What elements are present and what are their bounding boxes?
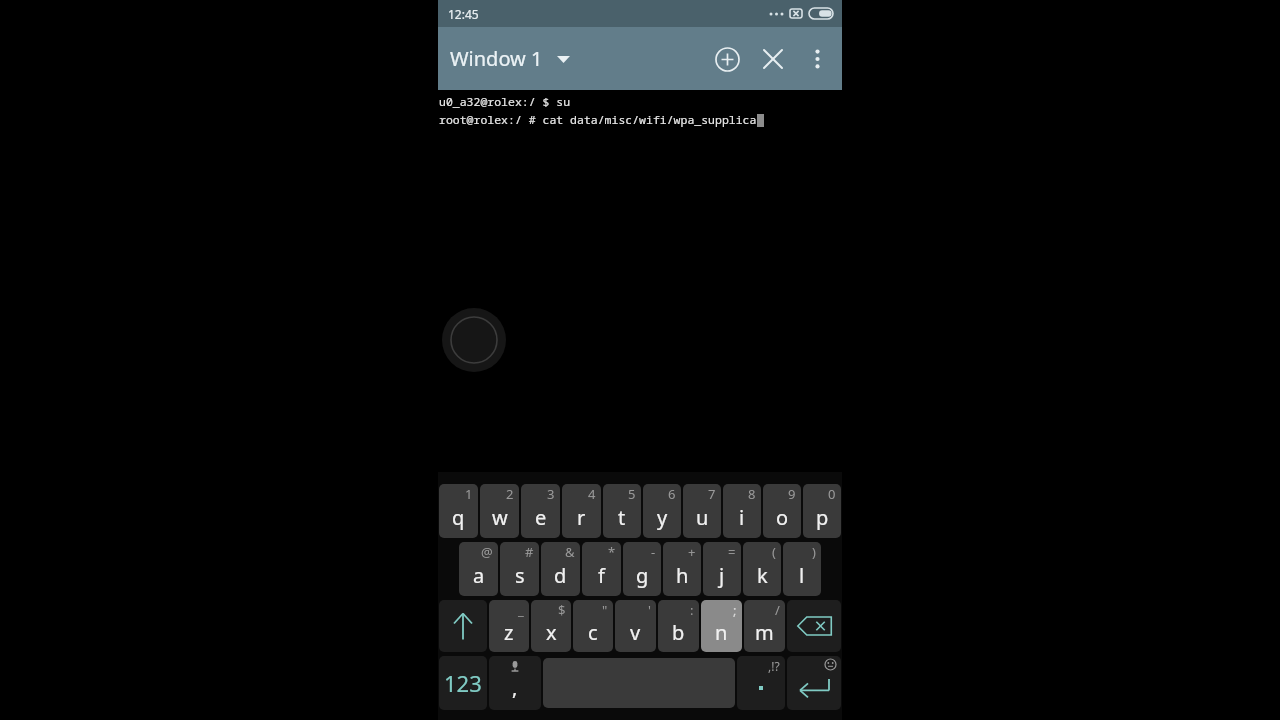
button[interactable]: $ [531,600,571,652]
button[interactable]: + [663,542,701,596]
staticText: 0 [828,485,836,503]
button[interactable]: & [541,542,580,596]
button[interactable]: : [658,600,699,652]
staticText: k [757,562,768,589]
staticText: & [565,543,575,561]
staticText: , [512,674,518,701]
button[interactable]: ; [701,600,742,652]
button[interactable]: / [744,600,785,652]
staticText: v [630,619,641,646]
staticText: * [608,543,616,561]
staticText: / [775,601,780,619]
staticText: : [690,601,694,619]
staticText: w [492,504,508,531]
button[interactable]: 1 [439,484,478,538]
staticText: 9 [788,485,796,503]
staticText: c [588,619,598,646]
staticText: d [554,562,567,589]
staticText: y [657,504,668,531]
button[interactable]: 123 [439,656,487,710]
button[interactable]: # [500,542,539,596]
staticText: @ [481,543,493,561]
button[interactable]: - [623,542,661,596]
staticText: l [799,562,805,589]
button[interactable]: 3 [521,484,560,538]
staticText: = [728,543,736,561]
staticText: 4 [588,485,596,503]
staticText: u [696,504,709,531]
staticText: root@rolex:/ # cat data/misc/wifi/wpa_su… [439,112,757,128]
button[interactable]: @ [459,542,498,596]
button[interactable]: * [582,542,621,596]
button[interactable]: , [489,656,541,710]
staticText: 2 [506,485,514,503]
staticText: ( [772,543,776,561]
staticText: $ [558,601,566,619]
staticText: ,!? [768,658,780,674]
staticText: 3 [547,485,555,503]
staticText: - [651,543,656,561]
staticText: " [602,601,608,619]
staticText: u0_a32@rolex:/ $ su [439,94,571,110]
staticText: a [473,562,485,589]
staticText: b [672,619,685,646]
staticText: 123 [444,668,482,698]
button[interactable]: 7 [683,484,721,538]
staticText: ) [812,543,816,561]
staticText: ' [648,601,651,619]
button[interactable]: = [703,542,741,596]
button[interactable]: Window 1 [444,39,576,78]
staticText: + [688,543,696,561]
staticText: 1 [465,485,473,503]
button[interactable]: Close window [750,36,796,82]
staticText: t [618,504,626,531]
staticText: z [504,619,514,646]
button[interactable]: 6 [643,484,681,538]
button[interactable]: 5 [603,484,641,538]
staticText: h [676,562,689,589]
button[interactable]: 0 [803,484,841,538]
staticText: m [755,619,774,646]
staticText: q [452,504,465,531]
button[interactable]: ( [743,542,781,596]
staticText: 6 [668,485,676,503]
button[interactable]: Backspace [787,600,841,652]
staticText: 12:45 [448,6,479,22]
staticText: n [715,619,728,646]
button[interactable]: 8 [723,484,761,538]
staticText: # [525,543,534,561]
staticText: s [515,562,525,589]
button[interactable]: Enter [787,656,841,710]
staticText: Window 1 [450,45,543,72]
button[interactable]: 2 [480,484,519,538]
button[interactable]: New window [704,36,750,82]
button[interactable]: " [573,600,613,652]
button[interactable]: ,!? [737,656,785,710]
staticText: 5 [628,485,636,503]
button[interactable]: 9 [763,484,801,538]
staticText: ; [733,601,737,619]
button[interactable]: ' [615,600,656,652]
staticText: r [577,504,586,531]
staticText: j [719,562,725,589]
staticText: o [776,504,789,531]
button[interactable]: _ [489,600,529,652]
staticText: p [816,504,829,531]
staticText: g [636,562,649,589]
staticText: _ [518,601,524,619]
staticText: 8 [748,485,756,503]
button[interactable]: 4 [562,484,601,538]
button[interactable]: More options [796,38,838,80]
staticText: e [535,504,547,531]
button[interactable]: ) [783,542,821,596]
staticText: i [739,504,745,531]
staticText: x [546,619,557,646]
staticText: 7 [708,485,716,503]
staticText: f [598,562,605,589]
button[interactable]: Shift [439,600,487,652]
